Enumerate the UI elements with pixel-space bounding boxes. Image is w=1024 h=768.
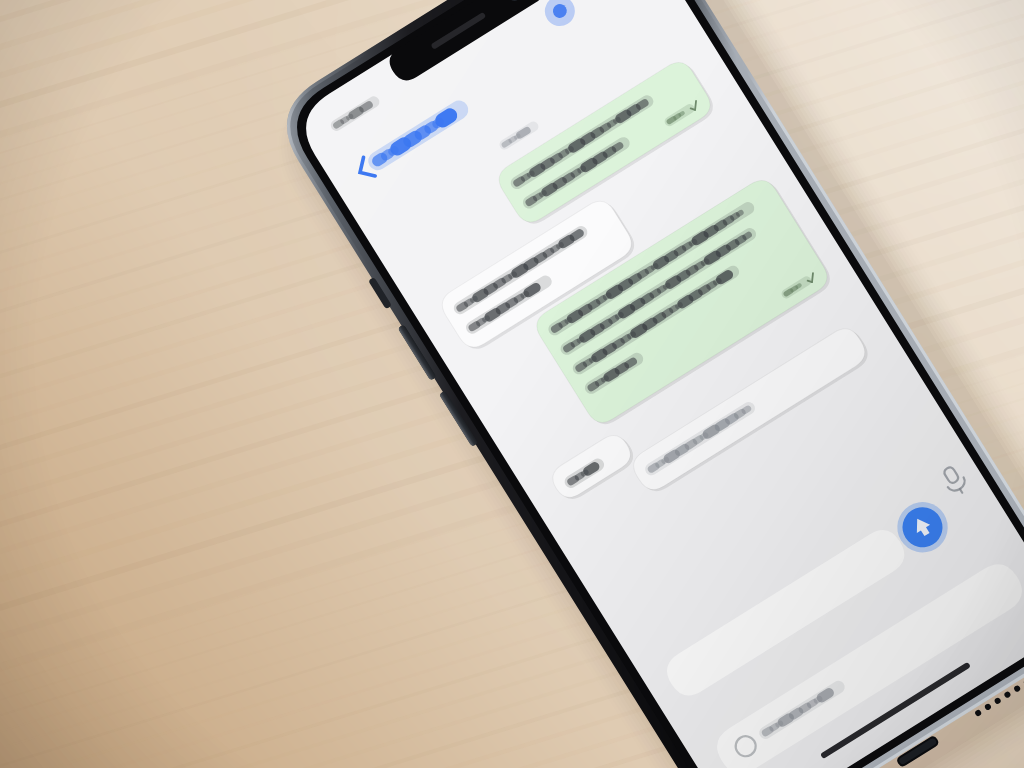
- button[interactable]: Photo of a phone on a wooden desk showin…: [0, 0, 1024, 768]
